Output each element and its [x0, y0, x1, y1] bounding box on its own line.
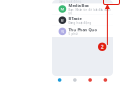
- button[interactable]: Stories: [82, 75, 98, 85]
- staticText: M: [60, 6, 64, 12]
- button[interactable]: People: [67, 75, 82, 85]
- staticText: 2: [101, 43, 104, 50]
- staticText: TQ: [61, 30, 64, 33]
- staticText: Bạn: Nhắn tin để bắt đầu cuộc trò: [68, 8, 110, 15]
- staticText: Đang hoạt động: [59, 0, 82, 3]
- staticText: BTaste: [68, 16, 81, 21]
- staticText: Thu Phan Quo: [68, 27, 96, 32]
- staticText: 5 phút: [68, 32, 78, 36]
- button[interactable]: M: [52, 3, 113, 15]
- button[interactable]: B: [52, 15, 113, 26]
- staticText: Đang hoạt động: [68, 21, 91, 25]
- button[interactable]: TQ: [52, 26, 113, 37]
- staticText: B: [61, 17, 64, 23]
- button[interactable]: Chats: [52, 75, 67, 85]
- staticText: Media Box: [68, 3, 88, 8]
- button[interactable]: Menu: [98, 75, 113, 85]
